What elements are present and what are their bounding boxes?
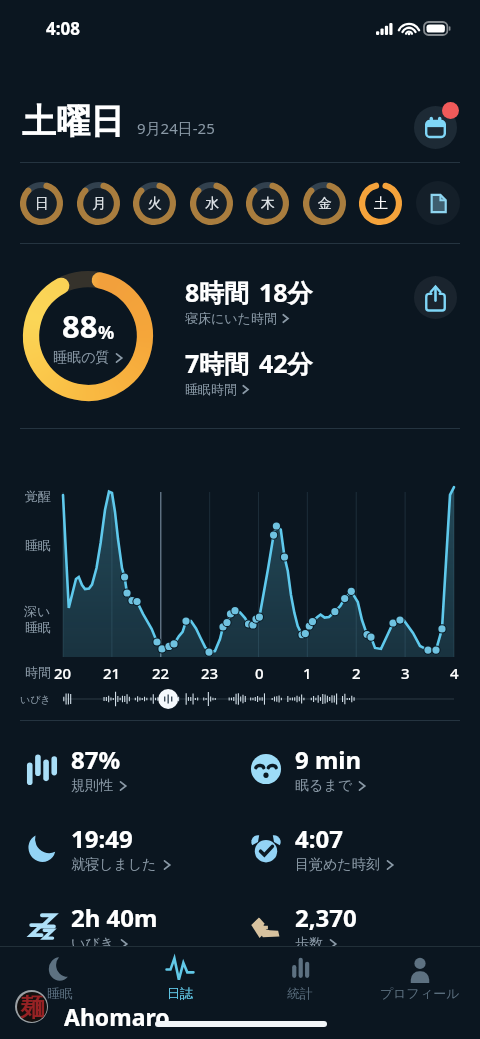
button[interactable]: 火 [133,182,176,225]
button[interactable]: 月 [77,182,120,225]
staticText: 2,370 [295,901,357,934]
button[interactable]: 4:07 [240,808,464,887]
staticText: 2 [352,663,361,683]
staticText: 3 [401,663,410,683]
staticText: 日 [35,195,49,213]
staticText: 4:07 [295,822,343,855]
button[interactable]: 統計 [240,947,360,1003]
button[interactable]: 2,370 [240,887,464,966]
staticText: 目覚めた時刻 [295,856,380,874]
staticText: 時間 [25,664,51,680]
staticText: 19:49 [71,822,133,855]
staticText: 23 [201,663,219,683]
staticText: 木 [261,195,275,213]
staticText: 21 [103,663,121,683]
staticText: いびき [20,693,51,706]
button[interactable]: Calendar [414,106,457,149]
staticText: 88 [62,305,98,347]
staticText: プロフィール [380,985,460,1001]
button[interactable]: 88 [23,271,153,401]
staticText: 42分 [259,346,313,380]
staticText: 就寝しました [71,856,157,874]
staticText: Ahomaro [64,1001,170,1032]
staticText: 4 [450,663,459,683]
staticText: 麺 [20,992,45,1022]
staticText: 日誌 [167,985,193,1001]
staticText: 22 [152,663,170,683]
staticText: 寝床にいた時間 [185,310,277,326]
staticText: 0 [255,663,264,683]
button[interactable]: 日 [20,182,63,225]
button[interactable]: 木 [246,182,289,225]
staticText: 2h 40m [71,901,158,934]
staticText: 睡眠 [25,619,51,635]
staticText: 睡眠 [47,985,73,1001]
staticText: 金 [318,195,332,213]
staticText: 87% [71,743,121,776]
button[interactable]: 水 [190,182,233,225]
staticText: 火 [148,195,162,213]
staticText: 睡眠 [25,537,51,553]
staticText: 7時間 [185,346,250,380]
staticText: 水 [205,195,219,213]
button[interactable]: 19:49 [16,808,240,887]
staticText: 深い [24,603,51,619]
staticText: 月 [92,195,106,213]
staticText: 覚醒 [25,488,51,504]
button[interactable]: 8時間 [185,275,313,326]
staticText: 規則性 [71,777,113,795]
staticText: 20 [54,663,72,683]
staticText: 18分 [259,275,313,309]
staticText: いびき [71,935,114,953]
staticText: 睡眠時間 [185,381,237,397]
staticText: 9 min [295,743,362,776]
staticText: 8時間 [185,275,250,309]
button[interactable]: 日誌 [120,947,240,1003]
staticText: 眠るまで [295,777,352,795]
button[interactable]: 2h 40m [16,887,240,966]
staticText: 統計 [287,985,313,1001]
button[interactable]: Notes [416,181,460,225]
button[interactable]: Share [414,276,457,319]
staticText: 土曜日 [22,100,124,143]
staticText: 睡眠の質 [53,349,110,367]
button[interactable]: 9 min [240,729,464,808]
button[interactable]: 金 [303,182,346,225]
staticText: 1 [303,663,312,683]
button[interactable]: プロフィール [360,947,480,1003]
button[interactable]: 87% [16,729,240,808]
staticText: 4:08 [46,17,80,40]
staticText: 土 [374,195,388,213]
staticText: % [98,320,115,345]
button[interactable]: 土 [359,182,402,225]
staticText: 9月24日-25 [137,118,215,138]
button[interactable]: 睡眠 [0,947,120,1003]
staticText: 歩数 [295,935,323,953]
button[interactable]: 7時間 [185,346,313,397]
